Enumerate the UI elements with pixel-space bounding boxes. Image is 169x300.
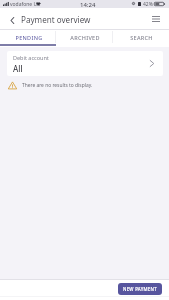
staticText: There are no results to display.: [22, 82, 93, 89]
button[interactable]: ARCHIVED: [57, 30, 113, 44]
staticText: ARCHIVED: [70, 34, 100, 41]
staticText: PENDING: [15, 34, 43, 41]
button[interactable]: Back: [0, 8, 21, 30]
button[interactable]: PENDING: [0, 30, 57, 44]
staticText: vodafone UK: [10, 1, 41, 8]
button[interactable]: Menu: [149, 8, 169, 30]
staticText: Payment overview: [21, 14, 91, 25]
staticText: 42%: [143, 1, 153, 8]
button[interactable]: SEARCH: [113, 30, 169, 44]
staticText: SEARCH: [130, 34, 153, 41]
staticText: NEW PAYMENT: [123, 286, 157, 292]
button[interactable]: NEW PAYMENT: [118, 283, 162, 295]
button[interactable]: Debit account: [7, 51, 163, 76]
staticText: All: [13, 63, 23, 74]
staticText: 14:24: [80, 1, 96, 9]
staticText: Debit account: [13, 54, 49, 61]
